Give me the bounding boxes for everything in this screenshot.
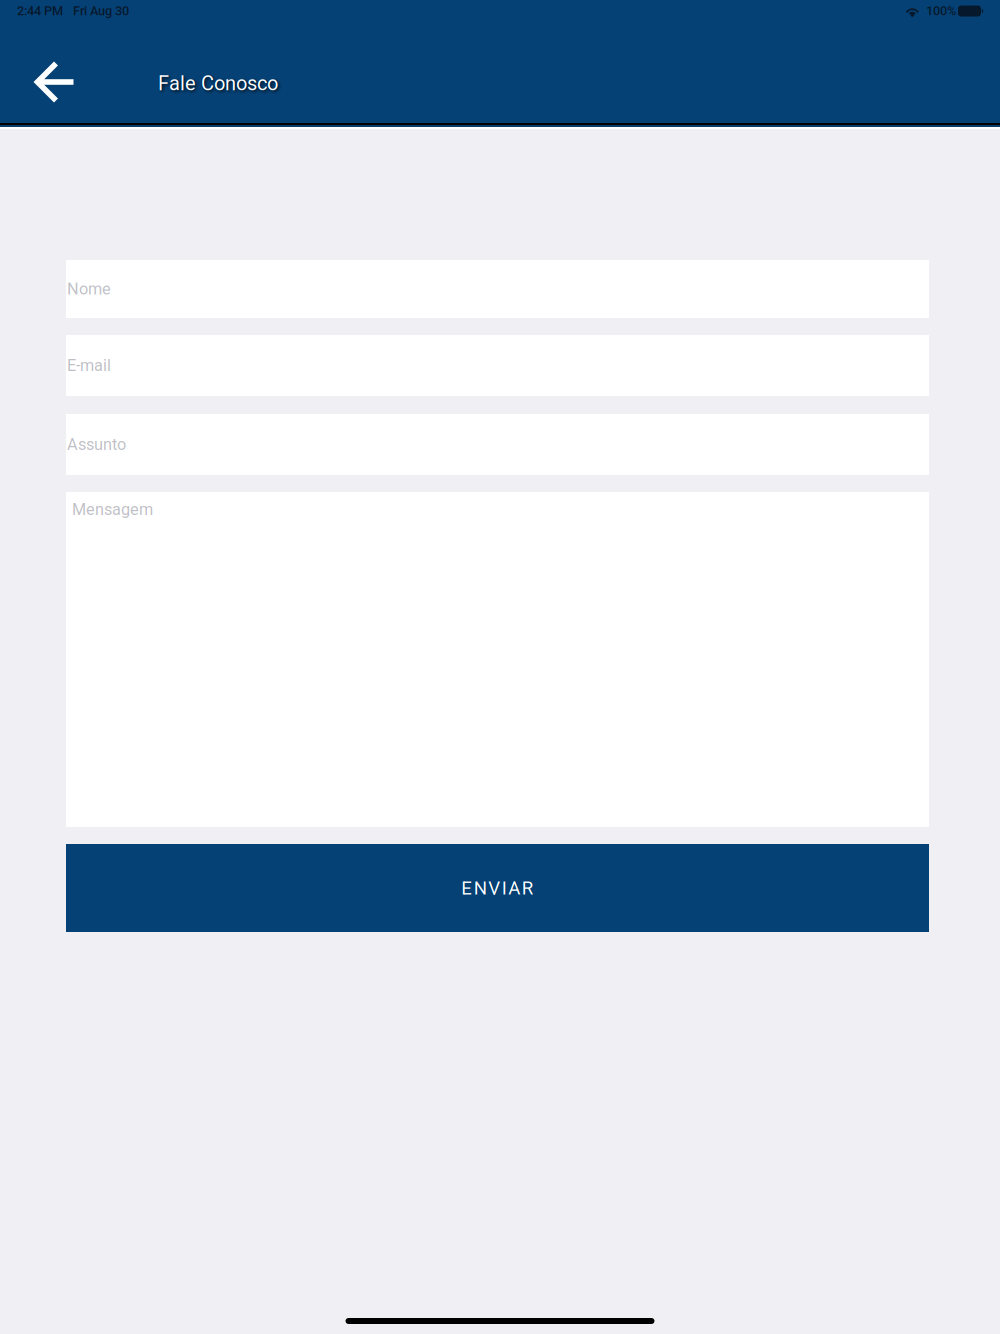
- staticText: 100%: [926, 4, 956, 18]
- button[interactable]: E-mail: [66, 335, 929, 396]
- button[interactable]: Nome: [66, 260, 929, 318]
- staticText: Assunto: [67, 435, 126, 454]
- staticText: Fale Conosco: [158, 72, 278, 95]
- staticText: E-mail: [67, 356, 111, 375]
- button[interactable]: Assunto: [66, 414, 929, 475]
- button[interactable]: Back: [0, 43, 90, 121]
- staticText: Nome: [67, 279, 111, 299]
- staticText: Fri Aug 30: [73, 4, 129, 18]
- staticText: ENVIAR: [461, 877, 534, 899]
- button[interactable]: ENVIAR: [66, 844, 929, 932]
- staticText: 2:44 PM: [17, 4, 63, 18]
- staticText: Mensagem: [72, 500, 153, 519]
